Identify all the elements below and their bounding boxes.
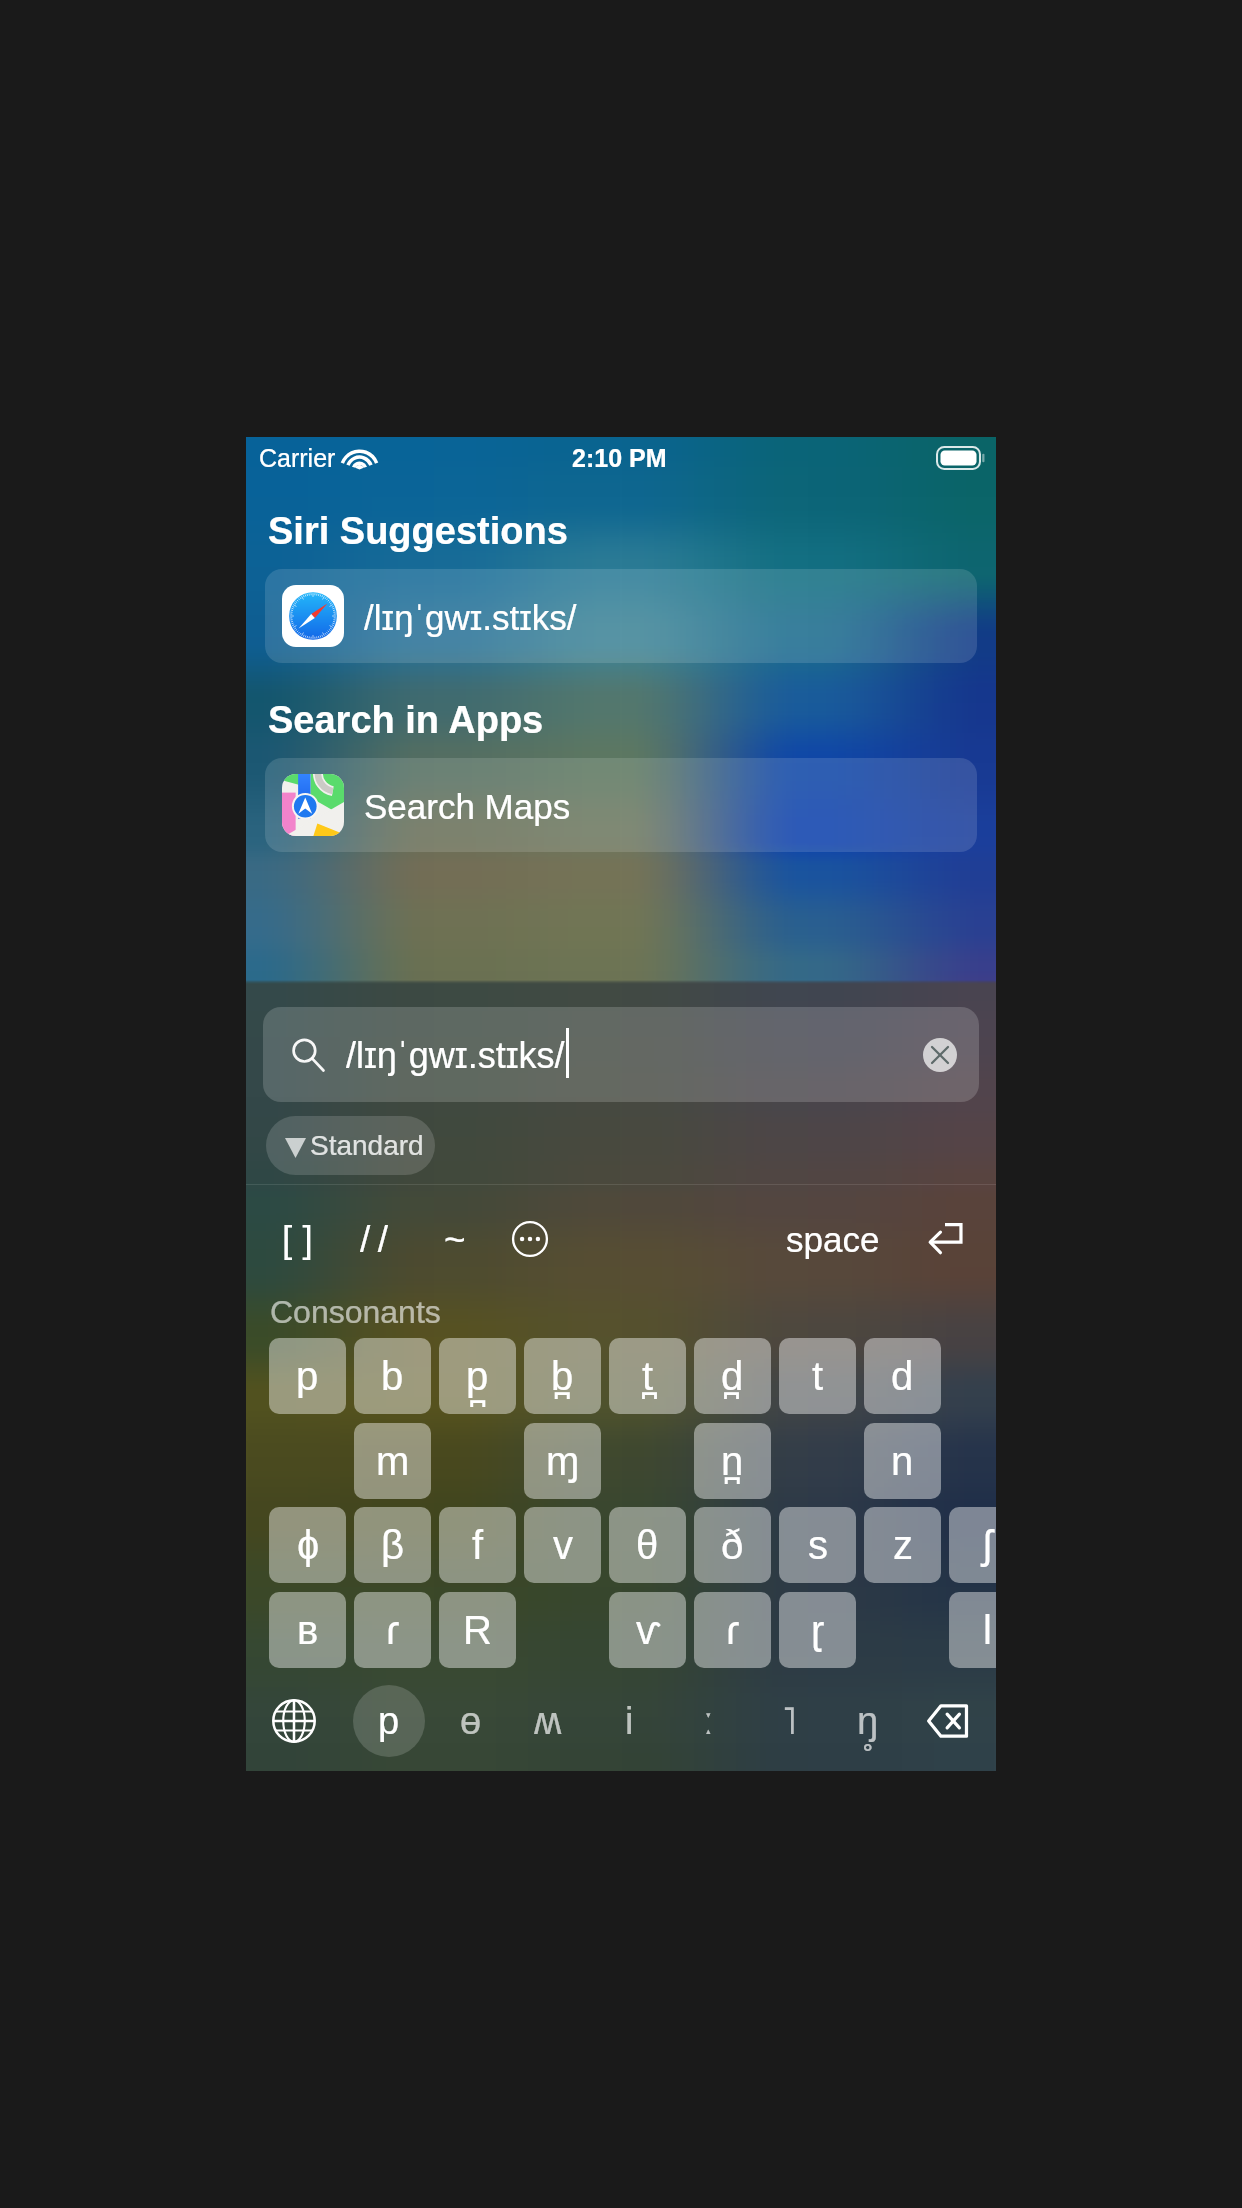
button[interactable]: [ ]: [266, 1203, 328, 1275]
button[interactable]: n̪: [694, 1423, 771, 1499]
button[interactable]: ˥: [769, 1691, 809, 1751]
button[interactable]: space: [773, 1203, 893, 1275]
button[interactable]: ʙ: [269, 1592, 346, 1668]
staticText: 2:10 PM: [572, 444, 667, 472]
staticText: d̪: [721, 1354, 744, 1399]
staticText: ʍ: [534, 1700, 562, 1742]
staticText: n: [891, 1439, 914, 1484]
button[interactable]: ɾ: [694, 1592, 771, 1668]
staticText: p: [378, 1700, 400, 1742]
button[interactable]: t: [779, 1338, 856, 1414]
staticText: m: [376, 1439, 410, 1484]
staticText: n̪: [721, 1439, 744, 1484]
button[interactable]: Delete: [917, 1690, 979, 1752]
button[interactable]: ɵ: [451, 1691, 491, 1751]
staticText: ~: [444, 1219, 466, 1260]
staticText: ɸ: [297, 1523, 319, 1568]
button[interactable]: ~: [424, 1203, 486, 1275]
button[interactable]: Clear text: [923, 1038, 957, 1072]
staticText: Standard: [310, 1130, 424, 1161]
staticText: Siri Suggestions: [268, 510, 568, 552]
staticText: t: [812, 1354, 824, 1399]
button[interactable]: /lɪŋˈgwɪ.stɪks/: [263, 1007, 979, 1102]
button[interactable]: Return: [915, 1209, 975, 1269]
button[interactable]: p: [353, 1685, 425, 1757]
staticText: i: [625, 1700, 634, 1742]
staticText: space: [786, 1220, 880, 1259]
button[interactable]: d̪: [694, 1338, 771, 1414]
staticText: ː: [703, 1700, 714, 1742]
button[interactable]: θ: [609, 1507, 686, 1583]
button[interactable]: l: [949, 1592, 996, 1668]
staticText: b̪: [551, 1354, 574, 1399]
staticText: ɵ: [460, 1700, 482, 1742]
staticText: / /: [360, 1219, 388, 1260]
staticText: ɾ: [726, 1608, 740, 1653]
button[interactable]: Search Maps: [265, 758, 977, 852]
button[interactable]: ː: [688, 1691, 728, 1751]
staticText: ɾ: [386, 1608, 400, 1653]
button[interactable]: Switch keyboard: [263, 1690, 325, 1752]
button[interactable]: i: [609, 1691, 649, 1751]
button[interactable]: R: [439, 1592, 516, 1668]
staticText: s: [808, 1523, 828, 1568]
staticText: Search Maps: [364, 787, 571, 826]
button[interactable]: Standard: [266, 1116, 435, 1175]
staticText: [ ]: [282, 1219, 313, 1260]
staticText: ˥: [782, 1700, 797, 1742]
staticText: ð: [721, 1523, 744, 1568]
staticText: ŋ̥: [857, 1700, 879, 1742]
staticText: β: [381, 1523, 405, 1568]
staticText: z: [893, 1523, 913, 1568]
button[interactable]: β: [354, 1507, 431, 1583]
staticText: b: [381, 1354, 404, 1399]
staticText: p: [296, 1354, 319, 1399]
button[interactable]: ð: [694, 1507, 771, 1583]
button[interactable]: ɸ: [269, 1507, 346, 1583]
staticText: t̪: [642, 1354, 654, 1399]
button[interactable]: ɾ: [354, 1592, 431, 1668]
button[interactable]: d: [864, 1338, 941, 1414]
button[interactable]: ʃ: [949, 1507, 996, 1583]
button[interactable]: m: [354, 1423, 431, 1499]
staticText: /lɪŋˈgwɪ.stɪks/: [346, 1035, 565, 1075]
button[interactable]: s: [779, 1507, 856, 1583]
button[interactable]: More symbols: [500, 1209, 560, 1269]
staticText: Search in Apps: [268, 699, 544, 741]
button[interactable]: v: [524, 1507, 601, 1583]
button[interactable]: /lɪŋˈgwɪ.stɪks/: [265, 569, 977, 663]
button[interactable]: b: [354, 1338, 431, 1414]
button[interactable]: ⱱ: [609, 1592, 686, 1668]
staticText: ʙ: [297, 1608, 319, 1653]
staticText: Consonants: [270, 1294, 441, 1330]
button[interactable]: ŋ̥: [848, 1691, 888, 1751]
button[interactable]: b̪: [524, 1338, 601, 1414]
staticText: R: [463, 1608, 492, 1653]
staticText: /lɪŋˈgwɪ.stɪks/: [364, 598, 577, 637]
button[interactable]: f: [439, 1507, 516, 1583]
button[interactable]: ʍ: [528, 1691, 568, 1751]
button[interactable]: ɽ: [779, 1592, 856, 1668]
staticText: l: [983, 1608, 992, 1653]
button[interactable]: ɱ: [524, 1423, 601, 1499]
button[interactable]: p̪: [439, 1338, 516, 1414]
staticText: ɱ: [546, 1439, 580, 1484]
staticText: d: [891, 1354, 914, 1399]
staticText: ɽ: [811, 1608, 825, 1653]
button[interactable]: z: [864, 1507, 941, 1583]
button[interactable]: / /: [343, 1203, 405, 1275]
button[interactable]: p: [269, 1338, 346, 1414]
staticText: Carrier: [259, 444, 336, 472]
button[interactable]: n: [864, 1423, 941, 1499]
staticText: ⱱ: [636, 1608, 660, 1653]
button[interactable]: t̪: [609, 1338, 686, 1414]
staticText: p̪: [466, 1354, 489, 1399]
staticText: θ: [636, 1523, 659, 1568]
staticText: v: [553, 1523, 573, 1568]
staticText: f: [472, 1523, 484, 1568]
staticText: ʃ: [983, 1523, 992, 1568]
